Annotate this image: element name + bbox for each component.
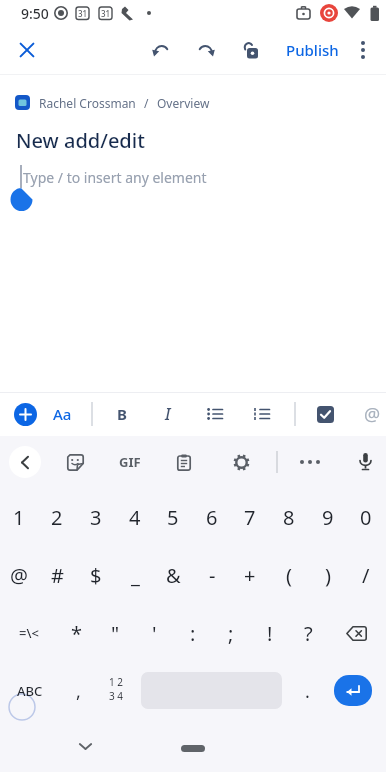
- button[interactable]: 3: [77, 489, 115, 545]
- staticText: 31: [78, 8, 88, 19]
- staticText: 9: [322, 504, 334, 531]
- button[interactable]: [328, 605, 384, 661]
- staticText: #: [51, 562, 64, 589]
- button[interactable]: :: [174, 605, 212, 661]
- button[interactable]: @: [354, 396, 386, 432]
- button[interactable]: [230, 30, 270, 70]
- staticText: .: [305, 679, 310, 704]
- staticText: Overview: [157, 95, 210, 111]
- button[interactable]: 4: [116, 489, 154, 545]
- button[interactable]: [221, 442, 261, 482]
- staticText: @: [10, 562, 28, 589]
- button[interactable]: I: [150, 396, 186, 432]
- button[interactable]: B: [104, 396, 140, 432]
- staticText: Aa: [53, 404, 72, 424]
- button[interactable]: #: [38, 547, 76, 603]
- button[interactable]: [244, 396, 280, 432]
- staticText: $: [90, 562, 102, 589]
- staticText: ;: [228, 620, 234, 647]
- staticText: 1: [13, 504, 25, 531]
- staticText: @: [364, 402, 381, 427]
- button[interactable]: [5, 442, 45, 482]
- button[interactable]: =\<: [1, 605, 57, 661]
- staticText: 0: [360, 504, 372, 531]
- staticText: 5: [167, 504, 179, 531]
- button[interactable]: [197, 396, 233, 432]
- button[interactable]: 0: [347, 489, 385, 545]
- button[interactable]: GIF: [108, 442, 152, 482]
- staticText: New add/edit: [16, 127, 145, 154]
- button[interactable]: [55, 442, 95, 482]
- button[interactable]: ": [96, 605, 134, 661]
- button[interactable]: [164, 442, 204, 482]
- staticText: Type / to insert any element: [23, 168, 207, 187]
- staticText: +: [244, 562, 256, 589]
- staticText: =\<: [19, 624, 39, 642]
- button[interactable]: [63, 726, 107, 766]
- button[interactable]: _: [116, 547, 154, 603]
- button[interactable]: Aa: [44, 396, 80, 432]
- button[interactable]: [334, 675, 372, 706]
- staticText: ': [152, 620, 157, 647]
- staticText: 31: [101, 8, 111, 19]
- staticText: 9:50: [21, 4, 49, 23]
- staticText: Publish: [286, 40, 339, 60]
- button[interactable]: 2: [38, 489, 76, 545]
- staticText: 7: [244, 504, 256, 531]
- button[interactable]: 6: [193, 489, 231, 545]
- staticText: (: [286, 562, 292, 589]
- staticText: ABC: [17, 682, 43, 700]
- staticText: I: [165, 403, 171, 425]
- button[interactable]: [141, 30, 181, 70]
- staticText: 6: [206, 504, 218, 531]
- staticText: Rachel Crossman: [39, 95, 136, 111]
- button[interactable]: *: [58, 605, 96, 661]
- button[interactable]: Publish: [277, 30, 347, 70]
- button[interactable]: [307, 396, 343, 432]
- button[interactable]: ?: [289, 605, 327, 661]
- staticText: 1 2: [109, 675, 124, 689]
- staticText: ,: [76, 679, 81, 704]
- button[interactable]: 1: [0, 489, 38, 545]
- staticText: 2: [51, 504, 63, 531]
- button[interactable]: ;: [212, 605, 250, 661]
- button[interactable]: 1 2: [96, 661, 136, 717]
- staticText: 3 4: [109, 689, 124, 703]
- staticText: ): [325, 562, 331, 589]
- staticText: ": [111, 620, 120, 647]
- button[interactable]: $: [77, 547, 115, 603]
- button[interactable]: .: [288, 663, 326, 719]
- button[interactable]: 5: [154, 489, 192, 545]
- button[interactable]: ,: [59, 663, 97, 719]
- button[interactable]: [7, 396, 43, 432]
- button[interactable]: 9: [309, 489, 347, 545]
- button[interactable]: [343, 30, 383, 70]
- button[interactable]: /: [347, 547, 385, 603]
- staticText: GIF: [119, 453, 141, 471]
- button[interactable]: ABC: [2, 663, 58, 719]
- button[interactable]: [181, 745, 205, 752]
- button[interactable]: 8: [270, 489, 308, 545]
- staticText: /: [144, 95, 149, 111]
- staticText: ?: [304, 620, 313, 647]
- button[interactable]: [185, 30, 225, 70]
- button[interactable]: (: [270, 547, 308, 603]
- staticText: *: [71, 620, 83, 647]
- button[interactable]: !: [251, 605, 289, 661]
- button[interactable]: [288, 442, 332, 482]
- staticText: 8: [283, 504, 295, 531]
- button[interactable]: -: [193, 547, 231, 603]
- button[interactable]: [345, 442, 385, 482]
- button[interactable]: +: [231, 547, 269, 603]
- button[interactable]: 7: [231, 489, 269, 545]
- staticText: !: [267, 620, 273, 647]
- button[interactable]: ): [309, 547, 347, 603]
- button[interactable]: ': [135, 605, 173, 661]
- button[interactable]: [7, 30, 47, 70]
- staticText: 4: [129, 504, 141, 531]
- button[interactable]: @: [0, 547, 38, 603]
- staticText: &: [166, 562, 181, 589]
- staticText: _: [131, 562, 140, 589]
- button[interactable]: &: [154, 547, 192, 603]
